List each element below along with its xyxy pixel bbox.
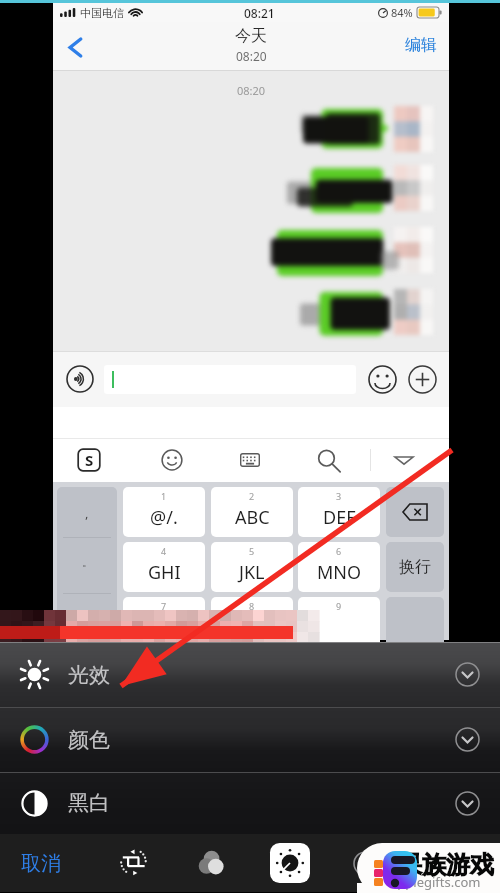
button[interactable]: More [408,365,437,394]
staticText: 9 [336,600,342,612]
staticText: 84% [391,5,413,20]
button[interactable]: 8 [211,597,293,647]
button[interactable]: Emoji [368,365,397,394]
staticText: applegifts.com [390,873,481,891]
button[interactable]: Sogou keyboard [74,445,104,475]
staticText: DEF [323,505,356,530]
staticText: 颜色 [68,727,110,753]
button[interactable]: 黑白 [0,772,500,834]
staticText: 光效 [68,662,110,688]
staticText: 08:21 [244,5,275,21]
button[interactable]: 光效 [0,642,500,707]
button[interactable] [386,597,444,647]
button[interactable]: Markup [343,841,387,885]
staticText: 08:20 [237,83,266,98]
button[interactable]: 3 [298,487,380,537]
button[interactable]: 换行 [386,542,444,592]
staticText: MNO [317,560,362,585]
staticText: 今天 [235,26,267,46]
staticText: 2 [249,490,255,502]
staticText: 果族游戏 [398,850,494,880]
staticText: 中国电信 [80,6,124,20]
button[interactable]: 7 [123,597,205,647]
staticText: @/. [150,505,178,530]
button[interactable]: 2 [211,487,293,537]
button[interactable]: Crop [112,841,156,885]
staticText: ABC [235,505,270,530]
staticText: 编辑 [405,35,437,55]
staticText: 7 [161,600,167,612]
button[interactable]: Emoji [157,445,187,475]
button[interactable]: 6 [298,542,380,592]
button[interactable]: Keyboard layout [235,445,265,475]
staticText: 换行 [399,557,431,577]
staticText: 6 [336,545,342,557]
button[interactable] [104,365,356,394]
staticText: JKL [239,560,265,585]
button[interactable]: 编辑 [405,35,437,55]
button[interactable]: 5 [211,542,293,592]
button[interactable]: 1 [123,487,205,537]
button[interactable]: Voice [66,365,94,393]
staticText: 。 [82,555,93,569]
staticText: , [85,504,89,522]
staticText: GHI [148,560,181,585]
button[interactable]: Adjust [268,841,312,885]
staticText: S [85,450,94,470]
button[interactable]: 取消 [10,834,72,892]
button[interactable]: Hide keyboard [389,445,419,475]
staticText: 1 [161,490,167,502]
button[interactable]: Back [62,32,88,62]
staticText: 8 [249,600,255,612]
staticText: 3 [336,490,342,502]
button[interactable]: Delete [386,487,444,537]
staticText: 取消 [21,851,61,876]
staticText: 黑白 [68,790,110,816]
button[interactable]: 颜色 [0,707,500,772]
staticText: 4 [161,545,167,557]
staticText: ? [84,605,91,625]
button[interactable]: 9 [298,597,380,647]
staticText: 5 [249,545,255,557]
staticText: 08:20 [236,48,267,64]
button[interactable]: 4 [123,542,205,592]
button[interactable]: Filters [189,841,233,885]
button[interactable]: Search [313,445,343,475]
